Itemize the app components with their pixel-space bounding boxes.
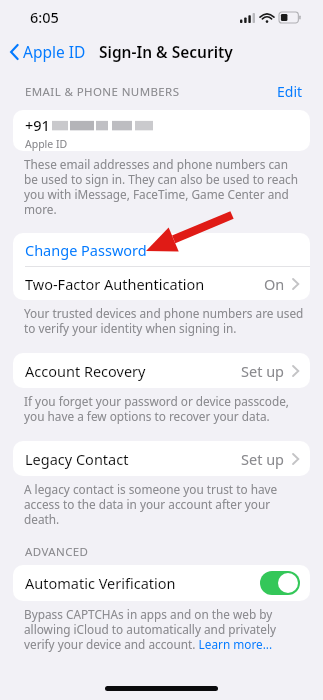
button[interactable]: +91 xyxy=(13,110,310,151)
button[interactable]: Change Password xyxy=(13,233,310,266)
button[interactable]: Automatic Verification toggle, on xyxy=(260,571,300,595)
staticText: Sign-In & Security xyxy=(99,41,233,62)
staticText: Your trusted devices and phone numbers a… xyxy=(24,305,304,337)
staticText: Bypass CAPTCHAs in apps and on the web b… xyxy=(24,606,304,653)
button[interactable]: Apple ID xyxy=(0,37,94,66)
staticText: Two-Factor Authentication xyxy=(25,274,205,294)
staticText: If you forget your password or device pa… xyxy=(24,393,304,425)
staticText: Automatic Verification xyxy=(25,573,176,593)
staticText: Edit xyxy=(277,82,303,101)
staticText: Set up xyxy=(241,361,285,381)
button[interactable]: Account Recovery xyxy=(13,353,310,388)
button[interactable]: Legacy Contact xyxy=(13,441,310,476)
staticText: A legacy contact is someone you trust to… xyxy=(24,481,304,528)
staticText: +91 xyxy=(25,115,50,135)
staticText: Account Recovery xyxy=(25,361,146,381)
staticText: ADVANCED xyxy=(25,544,89,560)
staticText: On xyxy=(264,274,285,294)
staticText: Change Password xyxy=(25,240,147,260)
button[interactable]: Automatic Verification xyxy=(13,565,310,601)
staticText: Apple ID xyxy=(23,41,86,62)
staticText: These email addresses and phone numbers … xyxy=(24,156,304,218)
staticText: Set up xyxy=(241,449,285,469)
staticText: EMAIL & PHONE NUMBERS xyxy=(25,84,180,100)
staticText: Legacy Contact xyxy=(25,449,129,469)
button[interactable]: Two-Factor Authentication xyxy=(13,267,310,300)
staticText: 6:05 xyxy=(30,7,59,27)
button[interactable]: Edit xyxy=(273,78,307,105)
staticText: Apple ID xyxy=(25,137,68,151)
